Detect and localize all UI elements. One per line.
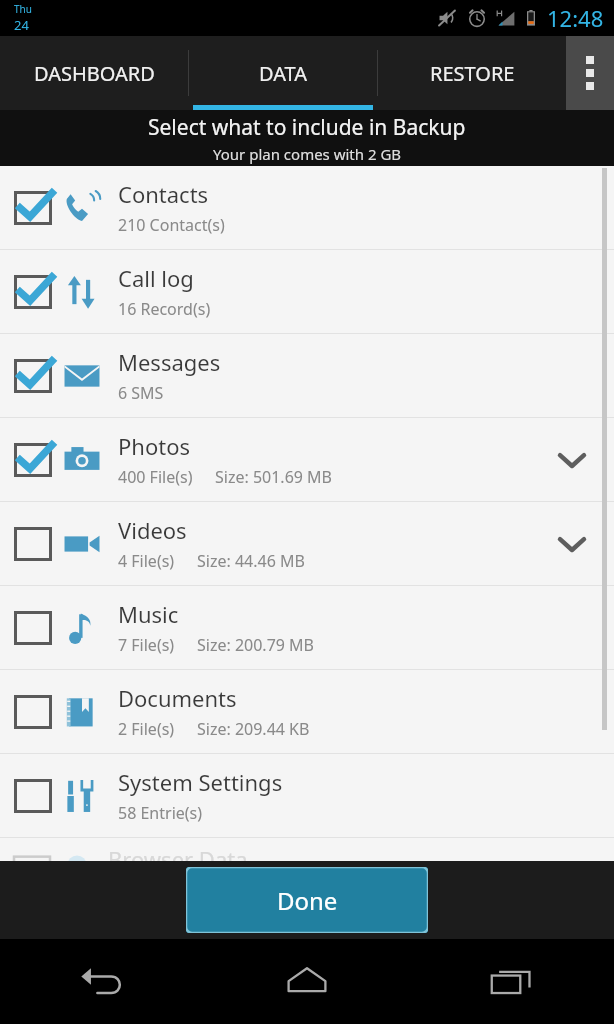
staticText: Call log [118,263,194,293]
button[interactable]: Expand Videos [544,516,600,572]
staticText: 400 File(s) [118,466,193,488]
button[interactable]: RESTORE [378,36,566,110]
staticText: 58 Entrie(s) [118,802,203,824]
staticText: DASHBOARD [34,60,155,87]
button[interactable]: DATA [189,36,377,110]
staticText: Browser Data [108,844,248,867]
staticText: 24 [14,16,29,34]
staticText: DATA [259,60,308,87]
staticText: 6 SMS [118,382,164,404]
staticText: Photos [118,431,191,461]
staticText: 210 Contact(s) [118,214,225,236]
button[interactable]: System Settings [0,754,614,837]
button[interactable]: Documents [0,670,614,753]
button[interactable]: Call log [0,250,614,333]
button[interactable]: More options [566,36,614,110]
staticText: Size: 44.46 MB [197,550,305,572]
button[interactable]: Messages [0,334,614,417]
staticText: Size: 209.44 KB [197,718,310,740]
button[interactable]: Back [0,939,204,1024]
staticText: 2 File(s) [118,718,175,740]
button[interactable]: Photos [0,418,614,501]
staticText: Your plan comes with 2 GB [213,144,402,164]
button[interactable]: DASHBOARD [0,36,188,110]
button[interactable]: Expand Photos [544,432,600,488]
staticText: 12:48 [547,3,604,33]
staticText: 16 Record(s) [118,298,211,320]
staticText: Music [118,599,179,629]
staticText: Done [277,884,338,917]
button[interactable]: Videos [0,502,614,585]
button[interactable]: Contacts [0,166,614,249]
staticText: Messages [118,347,221,377]
staticText: RESTORE [430,60,515,87]
button[interactable]: Recents [409,939,614,1024]
staticText: 7 File(s) [118,634,175,656]
staticText: Contacts [118,179,209,209]
staticText: Thu [14,2,32,16]
staticText: Select what to include in Backup [148,113,466,142]
staticText: Documents [118,683,237,713]
staticText: 4 File(s) [118,550,175,572]
staticText: System Settings [118,767,283,797]
staticText: Videos [118,515,187,545]
button[interactable]: Done [186,867,428,933]
button[interactable]: Music [0,586,614,669]
button[interactable]: Home [204,939,409,1024]
staticText: Size: 501.69 MB [215,466,333,488]
staticText: Size: 200.79 MB [197,634,315,656]
